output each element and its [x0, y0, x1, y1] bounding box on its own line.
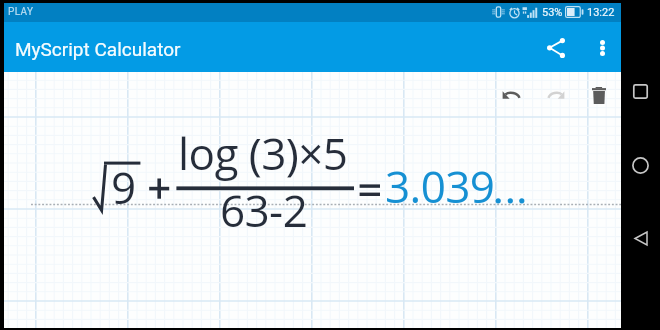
button[interactable]: Recent apps	[621, 73, 660, 111]
staticText: log (3)×5	[178, 123, 348, 183]
button[interactable]: Redo	[533, 75, 577, 111]
button[interactable]: Delete	[576, 76, 620, 112]
staticText: MyScript Calculator	[15, 38, 529, 60]
button[interactable]: Share	[529, 22, 576, 72]
button[interactable]: Home	[621, 146, 660, 184]
button[interactable]: Back	[621, 219, 660, 257]
button[interactable]: More options	[576, 22, 620, 72]
button[interactable]: Undo	[489, 75, 533, 111]
staticText: PLAY	[8, 6, 34, 18]
staticText: 9	[111, 157, 136, 217]
staticText: 63-2	[220, 180, 308, 240]
staticText: 53%	[542, 6, 563, 19]
staticText: 13:22	[587, 6, 615, 19]
staticText: 3.039	[385, 156, 495, 216]
